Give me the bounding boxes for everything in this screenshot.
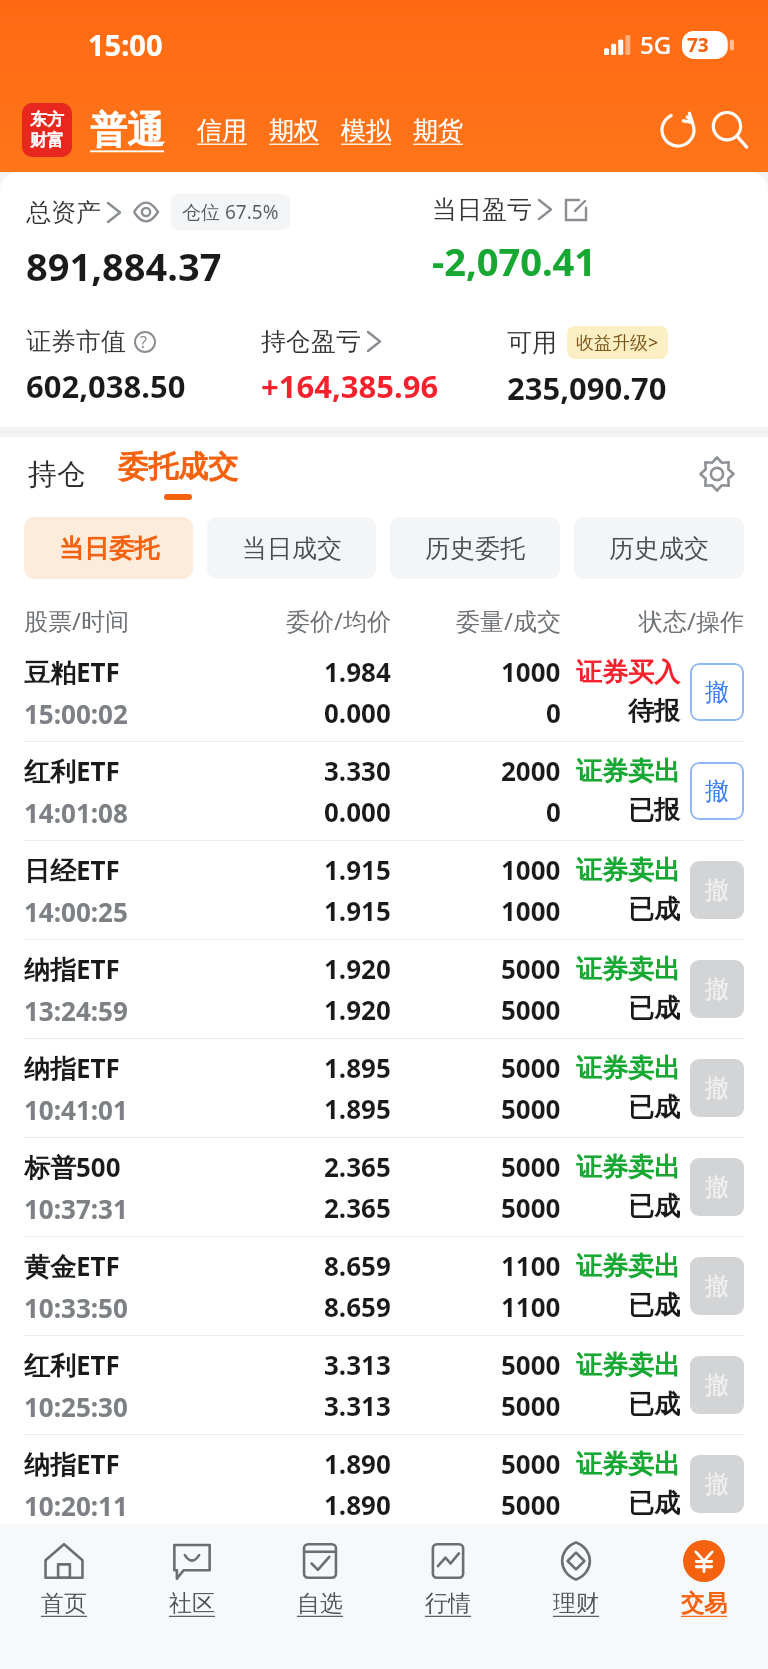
staticText: 证券卖出: [576, 755, 680, 788]
staticText: 证券卖出: [576, 953, 680, 986]
staticText: 14:00:25: [24, 894, 128, 929]
button[interactable]: 撤: [690, 861, 744, 919]
staticText: 自选: [297, 1589, 343, 1618]
staticText: 2000: [501, 753, 561, 788]
button[interactable]: 当日成交: [207, 517, 376, 579]
button[interactable]: 撤: [690, 663, 744, 721]
staticText: 1100: [501, 1248, 561, 1283]
button[interactable]: 持仓: [22, 456, 92, 493]
staticText: 总资产: [26, 197, 101, 228]
staticText: 财富: [30, 130, 64, 151]
staticText: 撤: [705, 1370, 729, 1400]
staticText: 证券卖出: [576, 1052, 680, 1085]
staticText: 委价/均价: [221, 604, 391, 637]
staticText: 0: [546, 695, 561, 730]
button[interactable]: 黄金ETF: [0, 1237, 768, 1336]
button[interactable]: 持仓盈亏: [261, 326, 381, 357]
staticText: 信用: [197, 115, 247, 146]
staticText: 撤: [705, 1469, 729, 1499]
button[interactable]: 刷新: [650, 102, 706, 158]
staticText: 15:00:02: [24, 696, 128, 731]
staticText: 1.895: [324, 1050, 391, 1085]
staticText: 撤: [705, 1073, 729, 1103]
button[interactable]: 纳指ETF: [0, 1039, 768, 1138]
button[interactable]: 期权: [258, 115, 330, 146]
button[interactable]: 纳指ETF: [0, 1435, 768, 1534]
staticText: 1.920: [324, 951, 391, 986]
button[interactable]: 自选: [256, 1524, 384, 1634]
staticText: -2,070.41: [432, 235, 597, 287]
button[interactable]: 撤: [690, 1455, 744, 1513]
button[interactable]: 期货: [402, 115, 474, 146]
button[interactable]: 社区: [128, 1524, 256, 1634]
staticText: 持仓: [28, 456, 86, 493]
button[interactable]: 首页: [0, 1524, 128, 1634]
button[interactable]: 纳指ETF: [0, 940, 768, 1039]
staticText: 状态/操作: [561, 604, 744, 637]
staticText: 15:00: [88, 25, 163, 64]
button[interactable]: 撤: [690, 960, 744, 1018]
button[interactable]: 豆粕ETF: [0, 643, 768, 742]
button[interactable]: 撤: [690, 1059, 744, 1117]
staticText: 已成: [628, 1289, 680, 1322]
button[interactable]: 东方财富: [22, 103, 72, 157]
staticText: 委量/成交: [391, 604, 561, 637]
staticText: 纳指ETF: [24, 951, 120, 987]
staticText: 1.920: [324, 992, 391, 1027]
staticText: 行情: [425, 1589, 471, 1618]
button[interactable]: 撤: [690, 1356, 744, 1414]
staticText: 13:24:59: [24, 993, 128, 1028]
staticText: 0.000: [324, 695, 391, 730]
button[interactable]: 模拟: [330, 115, 402, 146]
button[interactable]: 普通: [90, 107, 164, 154]
staticText: 10:37:31: [24, 1191, 128, 1226]
button[interactable]: 标普500: [0, 1138, 768, 1237]
staticText: 证券买入: [576, 656, 680, 689]
staticText: 1000: [501, 654, 561, 689]
button[interactable]: 收益升级>: [576, 330, 659, 355]
staticText: 当日委托: [59, 533, 159, 564]
staticText: 日经ETF: [24, 852, 120, 888]
button[interactable]: 委托成交: [114, 448, 242, 500]
staticText: 撤: [705, 974, 729, 1004]
staticText: 交易: [681, 1589, 727, 1618]
staticText: 1.895: [324, 1091, 391, 1126]
button[interactable]: 行情: [384, 1524, 512, 1634]
staticText: 3.330: [324, 753, 391, 788]
button[interactable]: 证券市值: [26, 326, 163, 357]
button[interactable]: 当日委托: [24, 517, 193, 579]
button[interactable]: 搜索: [706, 99, 754, 161]
button[interactable]: 日经ETF: [0, 841, 768, 940]
staticText: 期权: [269, 115, 319, 146]
staticText: 豆粕ETF: [24, 654, 120, 690]
staticText: 收益升级>: [576, 330, 659, 355]
staticText: 已报: [628, 794, 680, 827]
button[interactable]: 仓位 67.5%: [182, 199, 279, 225]
button[interactable]: 红利ETF: [0, 742, 768, 841]
button[interactable]: 历史成交: [574, 517, 744, 579]
staticText: 普通: [90, 107, 164, 154]
button[interactable]: 红利ETF: [0, 1336, 768, 1435]
staticText: 证券市值: [26, 326, 126, 357]
staticText: 历史成交: [609, 533, 709, 564]
button[interactable]: 撤: [690, 762, 744, 820]
staticText: 东方: [30, 109, 64, 130]
staticText: 撤: [705, 776, 729, 806]
staticText: 1.915: [324, 852, 391, 887]
button[interactable]: 设置: [690, 447, 744, 501]
button[interactable]: 撤: [690, 1257, 744, 1315]
button[interactable]: 总资产: [26, 194, 290, 230]
staticText: 1000: [501, 852, 561, 887]
button[interactable]: 撤: [690, 1158, 744, 1216]
staticText: 证券卖出: [576, 1151, 680, 1184]
button[interactable]: 理财: [512, 1524, 640, 1634]
button[interactable]: 交易: [640, 1524, 768, 1634]
staticText: 2.365: [324, 1149, 391, 1184]
staticText: 3.313: [324, 1347, 391, 1382]
staticText: 历史委托: [425, 533, 525, 564]
staticText: 已成: [628, 1190, 680, 1223]
button[interactable]: 历史委托: [390, 517, 560, 579]
staticText: 1.984: [324, 654, 391, 689]
button[interactable]: 信用: [186, 115, 258, 146]
button[interactable]: 当日盈亏: [432, 194, 588, 225]
